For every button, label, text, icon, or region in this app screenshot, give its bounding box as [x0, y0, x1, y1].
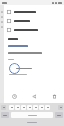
- button[interactable]: Key: [33, 105, 38, 110]
- button[interactable]: Key: [39, 105, 44, 110]
- other: Snooze: [12, 94, 17, 99]
- button[interactable]: [4, 16, 64, 25]
- button[interactable]: Space: [11, 112, 53, 118]
- button[interactable]: Key: [9, 105, 14, 110]
- button[interactable]: Enter: [55, 112, 63, 118]
- button[interactable]: Key: [21, 105, 26, 110]
- button[interactable]: Key: [45, 105, 50, 110]
- button[interactable]: Delete: [50, 92, 58, 100]
- button[interactable]: [4, 62, 64, 74]
- button[interactable]: Symbols: [1, 112, 9, 118]
- button[interactable]: Backspace: [58, 105, 63, 110]
- other: Delete: [52, 94, 57, 99]
- button[interactable]: Share: [30, 92, 38, 100]
- button[interactable]: Key: [15, 105, 20, 110]
- button[interactable]: Snooze: [10, 92, 18, 100]
- button[interactable]: Key: [27, 105, 32, 110]
- other: Share: [32, 94, 37, 99]
- button[interactable]: [4, 25, 64, 34]
- button[interactable]: Emoji: [1, 105, 6, 110]
- button[interactable]: [4, 7, 64, 16]
